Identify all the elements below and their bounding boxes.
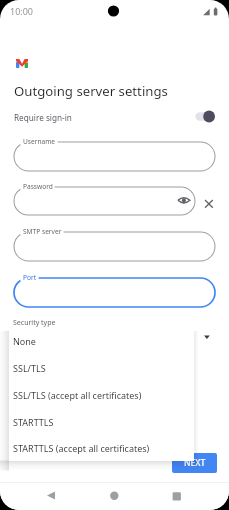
staticText: SMTP server [23,227,62,236]
button[interactable]: Back [37,482,65,510]
button[interactable]: SSL/TLS [9,355,194,382]
button[interactable]: Clear [202,197,216,211]
staticText: Username [23,137,56,146]
button[interactable] [14,278,215,307]
button[interactable] [14,187,195,215]
button[interactable]: STARTTLS [9,409,194,436]
staticText: 10:00 [10,5,34,17]
staticText: Security type [13,318,56,328]
button[interactable]: Require sign-in toggle [195,110,215,123]
staticText: None [13,335,36,347]
button[interactable] [14,142,215,171]
button[interactable]: Home [100,482,128,510]
staticText: STARTTLS (accept all certificates) [13,442,150,454]
staticText: Port [23,273,37,282]
button[interactable] [14,232,215,261]
button[interactable]: SSL/TLS (accept all certificates) [9,382,194,409]
button[interactable]: Expand security type [200,330,214,344]
staticText: Outgoing server settings [14,82,168,100]
staticText: Require sign-in [14,112,72,123]
button[interactable]: NEXT [172,453,217,473]
button[interactable]: STARTTLS (accept all certificates) [9,436,194,461]
staticText: SSL/TLS (accept all certificates) [13,389,142,401]
staticText: STARTTLS [13,416,54,428]
button[interactable]: Show password [177,193,191,207]
staticText: NEXT [184,457,206,469]
staticText: Password [23,182,53,191]
button[interactable]: None [9,328,194,355]
staticText: SSL/TLS [13,362,46,374]
button[interactable]: Recents [163,482,191,510]
